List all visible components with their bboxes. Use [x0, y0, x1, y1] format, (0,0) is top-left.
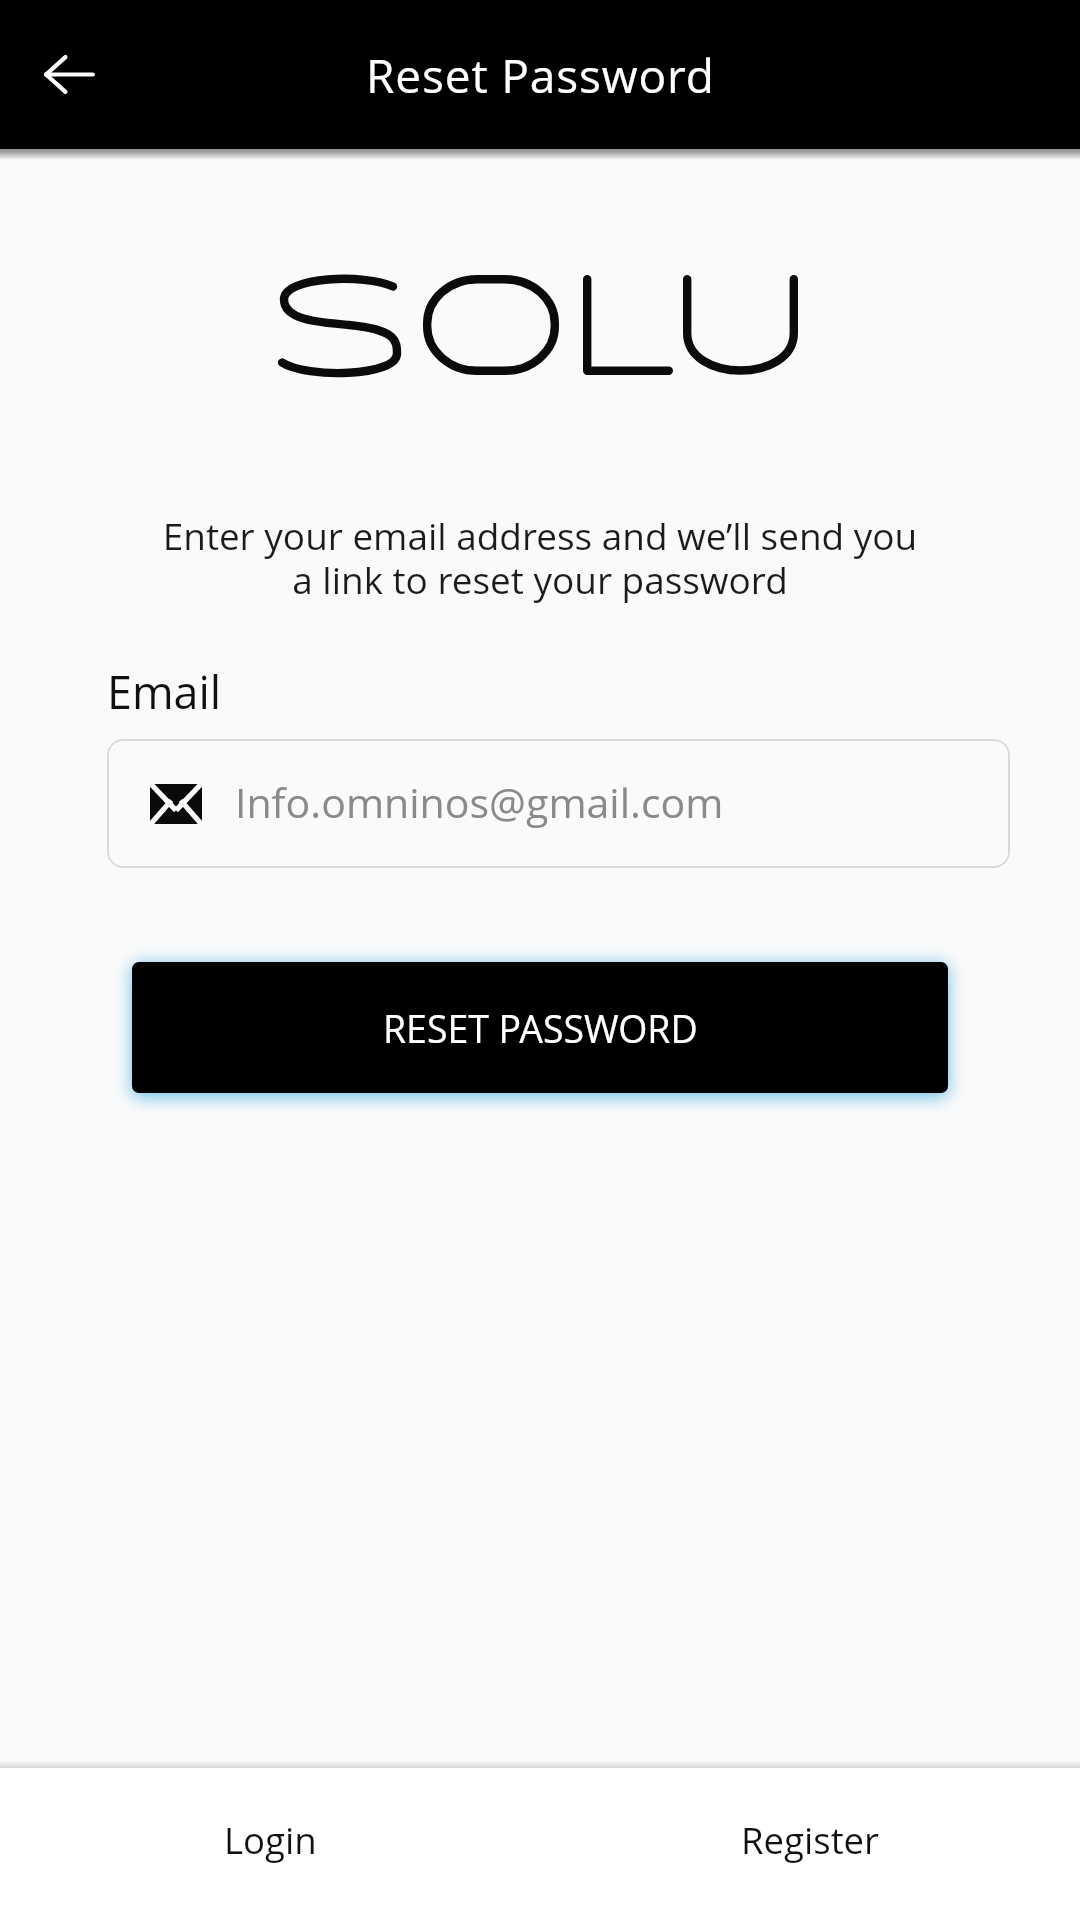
staticText: Register — [741, 1815, 879, 1865]
button[interactable]: RESET PASSWORD — [132, 962, 948, 1093]
button[interactable]: Info.omninos@gmail.com — [107, 739, 1010, 868]
staticText: RESET PASSWORD — [383, 1003, 698, 1054]
button[interactable]: Register — [540, 1768, 1080, 1920]
button[interactable]: Login — [0, 1768, 540, 1920]
staticText: Info.omninos@gmail.com — [235, 774, 724, 830]
staticText: Login — [224, 1815, 317, 1865]
staticText: Email — [107, 661, 222, 722]
button[interactable]: Back — [19, 24, 120, 125]
staticText: Reset Password — [366, 44, 715, 107]
staticText: Enter your email address and we’ll send … — [0, 511, 1080, 605]
